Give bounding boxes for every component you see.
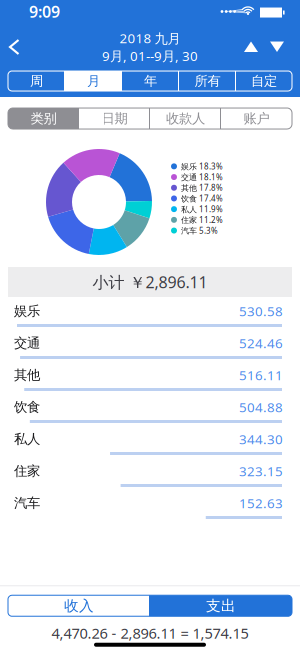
staticText: 住家 [14, 463, 40, 479]
staticText: 524.46 [239, 334, 283, 352]
staticText: 饮食 [14, 399, 40, 415]
staticText: 所有 [194, 73, 220, 89]
staticText: 9月, 01--9月, 30 [102, 47, 198, 65]
button[interactable]: 账户 [221, 108, 292, 129]
staticText: 支出 [206, 597, 236, 615]
button[interactable]: 周 [8, 71, 65, 91]
staticText: 4,470.26 - 2,896.11 = 1,574.15 [51, 623, 248, 643]
staticText: 汽车 5.3% [181, 225, 218, 236]
button[interactable]: 日期 [79, 108, 150, 129]
button[interactable]: 收入 [8, 595, 150, 616]
staticText: 2018 九月 [119, 29, 180, 47]
staticText: 自定 [251, 73, 277, 89]
button[interactable]: Next period [264, 34, 290, 60]
button[interactable]: 饮食 [0, 393, 300, 425]
button[interactable]: Back [0, 33, 28, 61]
button[interactable]: 私人 [0, 425, 300, 457]
staticText: 交通 [14, 335, 40, 351]
button[interactable]: 娱乐 [0, 297, 300, 329]
staticText: 娱乐 18.3% [181, 161, 223, 172]
staticText: 小计 ￥2,896.11 [92, 271, 207, 293]
staticText: 收入 [64, 597, 94, 615]
staticText: 日期 [101, 110, 127, 127]
staticText: 其他 [14, 367, 40, 383]
staticText: 私人 11.9% [181, 204, 223, 214]
staticText: 9:09 [29, 1, 60, 22]
button[interactable]: 支出 [150, 595, 292, 616]
staticText: 交通 18.1% [181, 172, 223, 182]
button[interactable]: 月 [65, 71, 122, 91]
button[interactable]: 自定 [236, 71, 292, 91]
button[interactable]: 收款人 [150, 108, 221, 129]
staticText: 344.30 [239, 430, 283, 448]
staticText: 住家 11.2% [181, 214, 223, 225]
staticText: 月 [87, 73, 100, 89]
staticText: 530.58 [239, 302, 283, 320]
button[interactable]: Previous period [238, 34, 264, 60]
staticText: 516.11 [239, 366, 283, 384]
button[interactable]: 类别 [8, 108, 79, 129]
staticText: 年 [144, 73, 157, 89]
staticText: 收款人 [166, 110, 205, 127]
button[interactable]: 年 [122, 71, 179, 91]
staticText: 504.88 [239, 398, 283, 416]
button[interactable]: 交通 [0, 329, 300, 361]
staticText: 饮食 17.4% [181, 193, 223, 204]
staticText: 私人 [14, 431, 40, 447]
staticText: 汽车 [14, 495, 40, 511]
staticText: 类别 [30, 110, 56, 127]
staticText: 323.15 [239, 462, 283, 480]
staticText: 周 [30, 73, 43, 89]
staticText: 娱乐 [14, 303, 40, 319]
button[interactable]: 住家 [0, 457, 300, 489]
button[interactable]: 其他 [0, 361, 300, 393]
button[interactable]: 所有 [179, 71, 236, 91]
staticText: 152.63 [239, 494, 283, 512]
button[interactable]: 汽车 [0, 489, 300, 521]
staticText: 账户 [243, 110, 269, 127]
staticText: 其他 17.8% [181, 182, 223, 193]
